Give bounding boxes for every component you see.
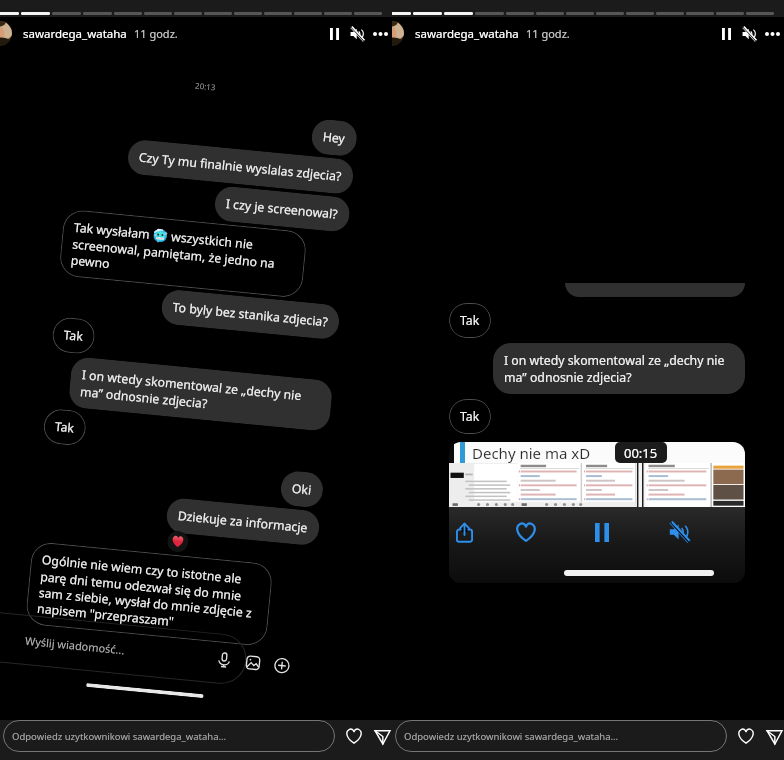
staticText: Tak wysłałam 🥶 wszystkich nie screenowal…	[70, 219, 296, 289]
button[interactable]: Pause story	[324, 24, 344, 44]
button[interactable]: Add	[271, 655, 292, 675]
staticText: 20:13	[195, 80, 217, 93]
staticText: Dziekuje za informacje	[177, 507, 309, 536]
button[interactable]: Ogólnie nie wiem czy to istotne ale parę…	[25, 541, 273, 647]
button[interactable]: Tak	[42, 408, 87, 447]
button[interactable]: Tak	[51, 316, 96, 355]
staticText: Hey	[322, 128, 346, 147]
staticText: Ogólnie nie wiem czy to istotne ale parę…	[37, 551, 262, 637]
button[interactable]: Tak wysłałam 🥶 wszystkich nie screenowal…	[58, 209, 308, 299]
button[interactable]: Mute	[667, 520, 691, 544]
button[interactable]: Pause story	[716, 24, 736, 44]
staticText: Odpowiedz uzytkownikowi sawardega_wataha…	[12, 730, 227, 743]
staticText: sawardega_wataha	[415, 26, 519, 42]
button[interactable]: I czy je screenowal?	[213, 185, 351, 233]
button[interactable]: Like	[343, 725, 365, 747]
button[interactable]: Gallery	[242, 652, 263, 673]
staticText: Tak	[63, 326, 84, 345]
button[interactable]: Hey	[310, 118, 358, 157]
button[interactable]: I on wtedy skomentowal ze „dechy nie ma”…	[68, 356, 333, 432]
button[interactable]: Voice message	[213, 649, 234, 670]
staticText: Tak	[460, 408, 480, 425]
button[interactable]: Share	[452, 520, 476, 544]
button[interactable]: Like	[514, 520, 538, 544]
button[interactable]: I on wtedy skomentowal ze „dechy nie ma”…	[493, 343, 745, 394]
staticText: I on wtedy skomentowal ze „dechy nie ma”…	[79, 366, 322, 422]
button[interactable]: Unmute	[347, 24, 367, 44]
staticText: 11 godz.	[134, 26, 178, 41]
staticText: Oki	[291, 480, 313, 499]
button[interactable]: Odpowiedz uzytkownikowi sawardega_wataha…	[3, 720, 335, 752]
staticText: 11 godz.	[526, 26, 570, 41]
button[interactable]: Dziekuje za informacje	[165, 497, 321, 546]
staticText: sawardega_wataha	[23, 26, 127, 42]
button[interactable]: More options	[762, 24, 782, 44]
button[interactable]: Pause	[590, 520, 614, 544]
button[interactable]: Like	[735, 725, 757, 747]
button[interactable]: Send message	[764, 726, 784, 746]
staticText: Odpowiedz uzytkownikowi sawardega_wataha…	[404, 730, 619, 743]
button[interactable]: Tak	[449, 399, 491, 434]
button[interactable]: Send message	[372, 726, 392, 746]
button[interactable]: Odpowiedz uzytkownikowi sawardega_wataha…	[395, 720, 727, 752]
button[interactable]: More options	[370, 24, 390, 44]
button[interactable]: Profile photo	[0, 21, 12, 46]
button[interactable]: To byly bez stanika zdjecia?	[160, 288, 341, 340]
button[interactable]: Tak	[449, 303, 491, 338]
staticText: I czy je screenowal?	[225, 195, 339, 223]
staticText: Tak	[460, 312, 480, 329]
staticText: 00:15	[624, 444, 658, 461]
button[interactable]: Oki	[279, 470, 324, 509]
button[interactable]: Unmute	[739, 24, 759, 44]
staticText: Tak	[54, 418, 75, 437]
button[interactable]: Czy Ty mu finalnie wyslalas zdjecia?	[126, 139, 355, 195]
staticText: I on wtedy skomentowal ze „dechy nie ma”…	[504, 352, 734, 385]
staticText: To byly bez stanika zdjecia?	[172, 298, 329, 330]
staticText: Wyślij wiadomość...	[24, 633, 125, 657]
button[interactable]: Profile photo	[392, 21, 404, 46]
staticText: Czy Ty mu finalnie wyslalas zdjecia?	[138, 149, 343, 185]
staticText: Dechy nie ma xD	[472, 443, 591, 463]
button[interactable]: Dechy nie ma xD	[449, 442, 745, 583]
